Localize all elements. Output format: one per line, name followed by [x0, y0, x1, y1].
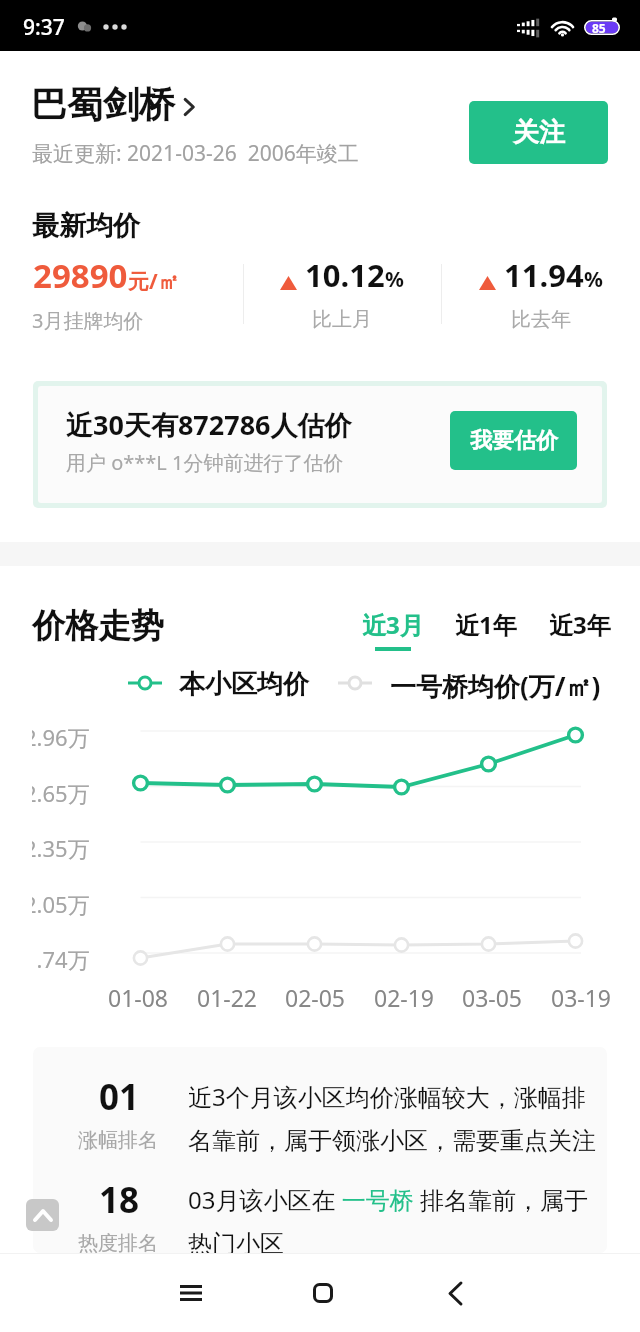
- staticText: 一号桥均价(万/㎡): [390, 668, 601, 704]
- staticText: 涨幅排名: [78, 1128, 158, 1153]
- staticText: 近30天有872786人估价: [66, 406, 352, 443]
- staticText: 85: [592, 20, 606, 35]
- staticText: 02-05: [285, 982, 346, 1013]
- staticText: %: [584, 265, 603, 294]
- staticText: 2.05万: [32, 889, 90, 919]
- staticText: 11.94: [504, 254, 584, 296]
- button[interactable]: 18: [33, 1150, 607, 1253]
- staticText: 3月挂牌均价: [32, 307, 144, 334]
- staticText: 最新均价: [32, 209, 140, 243]
- staticText: 比上月: [312, 307, 372, 332]
- button[interactable]: 我要估价: [450, 411, 577, 470]
- staticText: 02-19: [374, 982, 435, 1013]
- button[interactable]: 01: [33, 1047, 607, 1150]
- staticText: 01-08: [108, 982, 169, 1013]
- button[interactable]: 近30天有872786人估价: [38, 386, 602, 503]
- staticText: 热度排名: [78, 1231, 158, 1253]
- staticText: 2.65万: [32, 778, 90, 808]
- staticText: 比去年: [511, 307, 571, 332]
- staticText: 01: [99, 1073, 140, 1121]
- staticText: 03-19: [551, 982, 612, 1013]
- staticText: 9:37: [23, 13, 65, 42]
- staticText: 03-05: [462, 982, 523, 1013]
- staticText: 近3个月该小区均价涨幅较大，涨幅排名靠前，属于领涨小区，需要重点关注: [188, 1080, 600, 1156]
- staticText: 近3月: [362, 608, 424, 641]
- button[interactable]: Scroll to top: [26, 1199, 59, 1231]
- button[interactable]: 近3月: [362, 608, 424, 651]
- staticText: 用户 o***L 1分钟前进行了估价: [66, 449, 344, 476]
- button[interactable]: 近1年: [455, 608, 517, 651]
- staticText: 关注: [513, 116, 565, 149]
- button[interactable]: 关注: [469, 101, 608, 164]
- staticText: 03月该小区在 一号桥 排名靠前，属于热门小区: [188, 1183, 600, 1253]
- staticText: 2.96万: [32, 722, 90, 752]
- staticText: 最近更新: 2021-03-26 2006年竣工: [32, 139, 359, 168]
- staticText: 元/㎡: [128, 267, 179, 296]
- staticText: 巴蜀剑桥: [31, 82, 175, 127]
- button[interactable]: Home: [287, 1257, 359, 1329]
- staticText: %: [385, 265, 404, 294]
- staticText: 本小区均价: [179, 668, 309, 701]
- staticText: 29890: [33, 253, 128, 298]
- staticText: 01-22: [197, 982, 258, 1013]
- staticText: 1.74万: [32, 944, 90, 974]
- staticText: 18: [99, 1176, 140, 1224]
- staticText: 近1年: [455, 608, 517, 641]
- button[interactable]: Back: [419, 1257, 491, 1329]
- staticText: 近3年: [549, 608, 611, 641]
- button[interactable]: 近3年: [549, 608, 611, 651]
- staticText: 2.35万: [32, 833, 90, 863]
- staticText: 价格走势: [32, 605, 164, 647]
- button[interactable]: Recent apps: [155, 1257, 227, 1329]
- staticText: 10.12: [305, 254, 385, 296]
- staticText: 我要估价: [470, 427, 558, 455]
